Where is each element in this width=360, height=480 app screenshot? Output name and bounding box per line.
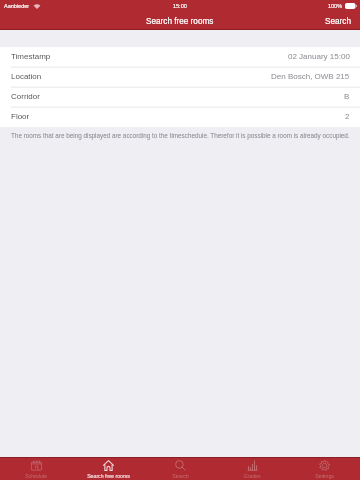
staticText: 15:00 <box>173 3 187 9</box>
button[interactable]: Settings <box>288 457 360 480</box>
staticText: Search <box>325 17 351 26</box>
button[interactable]: Timestamp <box>0 47 360 67</box>
staticText: Timestamp <box>11 52 51 61</box>
button[interactable]: Search <box>144 457 216 480</box>
staticText: Search free rooms <box>87 473 130 479</box>
staticText: Corridor <box>11 92 40 101</box>
button[interactable]: Grades <box>216 457 288 480</box>
staticText: Aanbieder <box>4 3 30 9</box>
button[interactable]: Corridor <box>0 87 360 107</box>
staticText: Settings <box>315 473 334 479</box>
staticText: 2 <box>345 112 350 121</box>
staticText: Search free rooms <box>146 17 214 26</box>
button[interactable]: Location <box>0 67 360 87</box>
button[interactable]: Floor <box>0 107 360 127</box>
staticText: 100% <box>328 3 343 9</box>
staticText: The rooms that are being displayed are a… <box>11 132 350 139</box>
staticText: Location <box>11 72 42 81</box>
button[interactable]: Schedule <box>0 457 72 480</box>
button[interactable]: Search <box>316 13 360 30</box>
staticText: Search <box>172 473 189 479</box>
staticText: Den Bosch, OWB 215 <box>271 72 350 81</box>
button[interactable]: Search free rooms <box>72 457 144 480</box>
staticText: Floor <box>11 112 30 121</box>
staticText: Grades <box>243 473 261 479</box>
staticText: Schedule <box>25 473 47 479</box>
staticText: 02 January 15:00 <box>288 52 350 61</box>
staticText: B <box>344 92 350 101</box>
